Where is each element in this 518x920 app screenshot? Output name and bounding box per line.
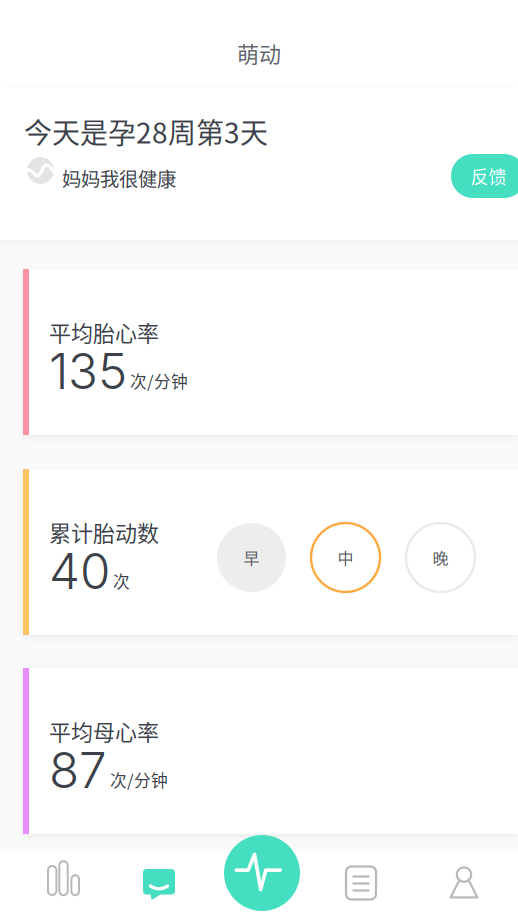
button[interactable]: Messages [142,868,176,902]
staticText: 萌动 [237,37,281,61]
staticText: 今天是孕28周第3天 [24,111,268,143]
button[interactable]: 中 [311,523,380,592]
staticText: 87 [49,740,107,800]
staticText: 中 [337,546,353,569]
staticText: 次/分钟 [110,768,168,792]
staticText: 平均母心率 [49,715,159,739]
staticText: 40 [49,541,110,601]
button[interactable]: Records [344,866,378,900]
staticText: 135 [49,341,127,401]
button[interactable]: 反馈 [451,154,518,198]
staticText: 平均胎心率 [49,316,159,340]
staticText: 次 [113,569,130,593]
button[interactable]: 晚 [406,523,475,592]
button[interactable]: 早 [217,523,286,592]
button[interactable]: Profile [447,866,481,900]
staticText: 妈妈我很健康 [62,164,176,188]
staticText: 累计胎动数 [49,516,159,540]
staticText: 反馈 [470,163,506,189]
button[interactable]: Statistics [47,862,81,896]
button[interactable]: Start monitoring [224,835,300,911]
staticText: 次/分钟 [130,369,188,393]
staticText: 晚 [432,546,448,569]
staticText: 早 [243,546,259,569]
